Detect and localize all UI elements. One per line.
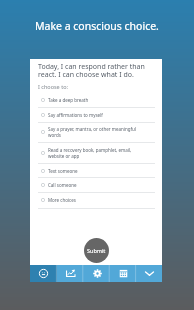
button[interactable]: Mood [30, 265, 57, 282]
staticText: I choose to: [38, 83, 68, 90]
staticText: Today, I can respond rather than react. … [38, 62, 150, 79]
button[interactable]: Progress chart [57, 265, 84, 282]
button[interactable]: Settings [84, 265, 110, 282]
button[interactable]: Call someone [30, 177, 162, 192]
button[interactable]: More [136, 265, 162, 282]
button[interactable]: Submit [84, 238, 109, 263]
button[interactable]: Calendar [110, 265, 136, 282]
staticText: More choices [48, 197, 140, 203]
button[interactable]: Say affirmations to myself [30, 107, 162, 123]
button[interactable]: Say a prayer, mantra, or other meaningfu… [30, 122, 162, 142]
staticText: Read a recovery book, pamphlet, email, w… [48, 147, 140, 159]
button[interactable]: More choices [30, 192, 162, 208]
staticText: Say a prayer, mantra, or other meaningfu… [48, 126, 140, 138]
button[interactable]: Text someone [30, 163, 162, 178]
button[interactable]: Read a recovery book, pamphlet, email, w… [30, 142, 162, 163]
staticText: Submit [87, 247, 106, 254]
staticText: Say affirmations to myself [48, 112, 140, 118]
staticText: Take a deep breath [48, 97, 140, 103]
staticText: Text someone [48, 168, 140, 174]
button[interactable]: Take a deep breath [30, 92, 162, 107]
staticText: Make a conscious choice. [35, 19, 159, 33]
staticText: Call someone [48, 182, 140, 188]
